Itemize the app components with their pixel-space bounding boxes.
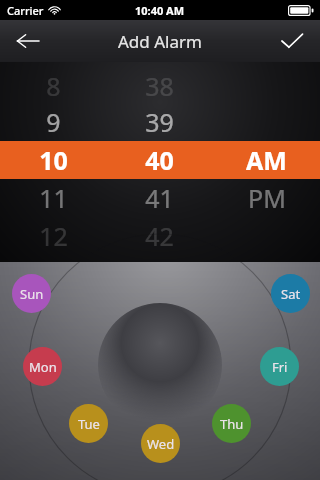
- staticText: PM: [248, 181, 286, 215]
- staticText: 39: [145, 105, 174, 139]
- staticText: Add Alarm: [118, 30, 202, 53]
- button[interactable]: Back: [0, 20, 56, 62]
- button[interactable]: Sat: [271, 274, 310, 313]
- staticText: 40: [145, 143, 174, 177]
- staticText: 11: [39, 181, 68, 215]
- staticText: Sun: [20, 285, 44, 303]
- button[interactable]: Thu: [212, 404, 251, 443]
- staticText: 41: [145, 181, 174, 215]
- staticText: 9: [46, 105, 61, 139]
- staticText: Wed: [147, 435, 175, 453]
- staticText: Mon: [29, 358, 57, 376]
- button[interactable]: 38: [106, 62, 213, 262]
- button[interactable]: Tue: [69, 404, 108, 443]
- staticText: 42: [145, 219, 174, 253]
- staticText: AM: [246, 143, 287, 177]
- staticText: 10: [39, 143, 68, 177]
- staticText: 12: [39, 219, 68, 253]
- button[interactable]: Save: [264, 20, 320, 62]
- staticText: Tue: [78, 415, 100, 433]
- staticText: 8: [46, 69, 61, 103]
- button[interactable]: Mon: [23, 347, 62, 386]
- button[interactable]: AM: [213, 62, 320, 262]
- staticText: Carrier: [7, 3, 44, 18]
- staticText: Thu: [220, 415, 244, 433]
- staticText: Sat: [281, 285, 301, 303]
- button[interactable]: Sun: [12, 274, 51, 313]
- button[interactable]: Fri: [260, 347, 299, 386]
- staticText: 10:40 AM: [135, 3, 185, 18]
- button[interactable]: 8: [0, 62, 106, 262]
- staticText: Fri: [272, 358, 288, 376]
- staticText: 38: [145, 69, 174, 103]
- button[interactable]: Wed: [141, 424, 180, 463]
